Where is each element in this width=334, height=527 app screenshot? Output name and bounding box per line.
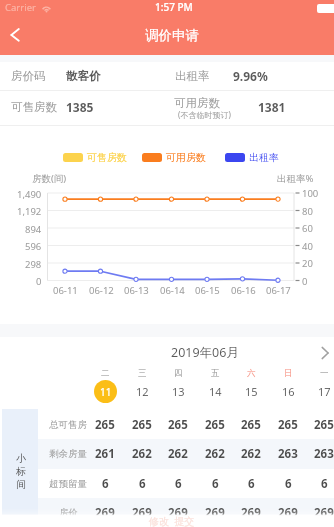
staticText: 269 [314,505,334,521]
staticText: 269 [205,505,225,521]
staticText: 0 [36,275,42,288]
staticText: 265 [205,417,225,433]
button[interactable]: 12 [127,379,157,403]
staticText: (不含临时预订) [178,109,231,120]
staticText: 06-13 [124,284,149,297]
staticText: 6 [139,476,146,492]
staticText: 06-17 [266,284,291,297]
staticText: 房数(间) [32,172,67,185]
staticText: 2019年06月 [171,344,239,361]
staticText: 五 [211,368,220,379]
staticText: 6 [175,476,182,492]
staticText: 6 [321,476,328,492]
staticText: 06-11 [53,284,78,297]
staticText: 100 [302,187,319,200]
staticText: 262 [205,446,225,462]
staticText: 269 [168,505,188,521]
staticText: 263 [314,446,334,462]
button[interactable]: Next month [314,342,334,364]
staticText: 265 [314,417,334,433]
staticText: 06-12 [89,284,114,297]
button[interactable]: 11 [90,379,120,403]
staticText: 二 [101,368,110,379]
staticText: 可售房数 [87,151,127,164]
staticText: 265 [168,417,188,433]
staticText: 1:57 PM [155,0,193,14]
staticText: 三 [138,368,147,379]
staticText: 40 [302,240,313,253]
staticText: 间 [16,478,26,491]
staticText: 13 [172,384,185,399]
button[interactable]: 16 [273,379,303,403]
staticText: 可售房数 [11,100,57,114]
staticText: 6 [285,476,292,492]
staticText: 60 [302,222,313,235]
staticText: 596 [25,240,42,253]
staticText: 一 [320,368,329,379]
staticText: 298 [25,258,42,271]
staticText: 散客价 [66,69,101,83]
staticText: 小 [16,452,26,465]
staticText: 1,192 [17,205,42,218]
staticText: 894 [25,223,42,236]
staticText: 修改 提交 [149,514,195,527]
staticText: 269 [95,505,115,521]
staticText: 265 [132,417,152,433]
staticText: Carrier [5,1,36,14]
staticText: 17 [318,384,331,399]
staticText: 262 [241,446,261,462]
staticText: 9.96% [233,68,268,84]
staticText: 269 [278,505,298,521]
staticText: 20 [302,257,313,270]
staticText: 出租率 [249,151,279,164]
staticText: 0 [302,275,308,288]
staticText: 12 [136,384,149,399]
staticText: 可用房数 [166,151,206,164]
staticText: 14 [209,384,222,399]
staticText: 15 [245,384,258,399]
staticText: 262 [132,446,152,462]
staticText: 总可售房 [49,419,87,431]
staticText: 269 [241,505,261,521]
staticText: 269 [132,505,152,521]
staticText: 16 [282,384,295,399]
staticText: 标 [16,465,26,478]
button[interactable]: 13 [163,379,193,403]
staticText: 四 [174,368,183,379]
staticText: 06-15 [195,284,220,297]
button[interactable]: 17 [309,379,334,403]
staticText: 80 [302,205,313,218]
staticText: 1381 [258,99,286,115]
button[interactable]: 14 [200,379,230,403]
staticText: 剩余房量 [49,448,87,460]
staticText: 房价 [59,507,78,519]
staticText: 06-14 [160,284,185,297]
button[interactable]: Back [1,21,29,49]
staticText: 6 [212,476,219,492]
button[interactable]: 15 [236,379,266,403]
staticText: 1385 [66,99,94,115]
staticText: 11 [100,385,112,399]
staticText: 265 [241,417,261,433]
staticText: 出租率 [175,69,210,83]
staticText: 调价申请 [145,27,199,44]
staticText: 265 [278,417,298,433]
staticText: 日 [284,368,293,379]
staticText: 1,490 [17,188,42,201]
staticText: 六 [247,368,256,379]
staticText: 261 [95,446,115,462]
staticText: 出租率% [277,172,314,185]
staticText: 06-16 [231,284,256,297]
staticText: 超预留量 [49,478,87,490]
staticText: 可用房数 [174,96,220,110]
staticText: 262 [168,446,188,462]
staticText: 265 [95,417,115,433]
staticText: 6 [248,476,255,492]
staticText: 房价码 [11,69,46,83]
staticText: 263 [278,446,298,462]
staticText: 6 [102,476,109,492]
